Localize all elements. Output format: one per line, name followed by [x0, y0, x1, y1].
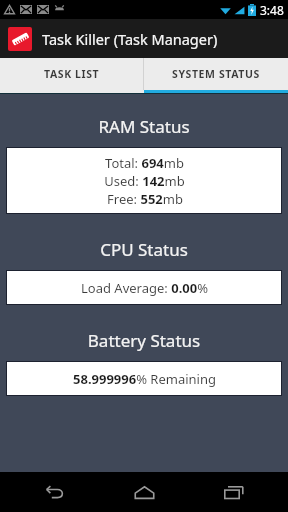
button[interactable]: Back [20, 472, 90, 512]
staticText: Total: 694mb [105, 154, 184, 172]
staticText: RAM Status [0, 115, 288, 138]
button[interactable]: Home [109, 472, 179, 512]
button[interactable]: Recent apps [199, 472, 269, 512]
button[interactable]: TASK LIST [0, 58, 143, 90]
staticText: SYSTEM STATUS [172, 67, 260, 81]
staticText: Free: 552mb [107, 190, 183, 208]
staticText: Load Average: 0.00% [81, 279, 208, 297]
button[interactable]: Load Average: 0.00% [6, 270, 282, 305]
button[interactable]: App icon [8, 27, 32, 51]
staticText: Task Killer (Task Manager) [42, 29, 218, 49]
button[interactable]: SYSTEM STATUS [144, 58, 288, 90]
button[interactable]: Total: 694mb [6, 147, 282, 214]
staticText: 58.999996% Remaining [73, 370, 216, 388]
staticText: CPU Status [0, 238, 288, 261]
button[interactable]: 58.999996% Remaining [6, 361, 282, 396]
staticText: 3:48 [260, 2, 284, 18]
staticText: Used: 142mb [104, 172, 185, 190]
staticText: TASK LIST [44, 67, 100, 81]
staticText: Battery Status [0, 329, 288, 352]
